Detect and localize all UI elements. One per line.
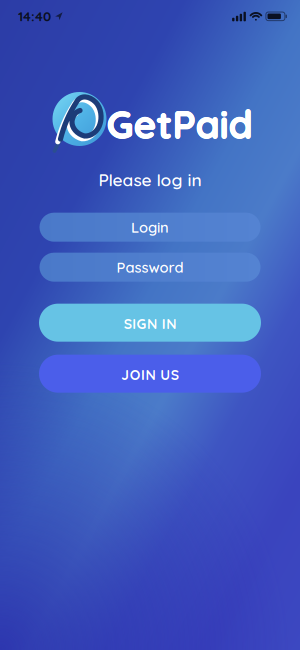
staticText: SIGN IN	[124, 315, 176, 332]
staticText: 14:40	[18, 8, 51, 25]
staticText: GetPaid	[106, 100, 252, 149]
staticText: JOIN US	[121, 366, 179, 383]
staticText: GetPaid	[106, 100, 252, 148]
staticText: GetPaid	[106, 99, 252, 148]
button[interactable]: Login	[39, 213, 260, 242]
button[interactable]: Password	[39, 253, 260, 282]
staticText: GetPaid	[106, 100, 252, 148]
staticText: Please log in	[98, 169, 201, 191]
staticText: Password	[116, 258, 183, 276]
staticText: GetPaid	[107, 100, 253, 148]
staticText: Login	[131, 218, 169, 236]
button[interactable]: SIGN IN	[39, 304, 261, 342]
button[interactable]: JOIN US	[39, 355, 261, 393]
